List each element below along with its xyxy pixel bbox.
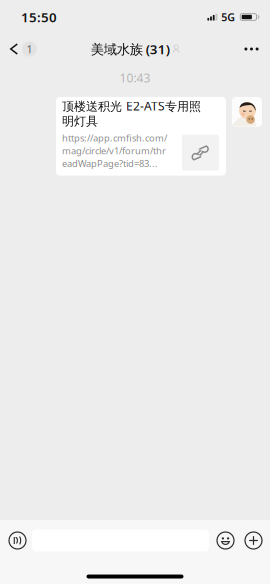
staticText: mag/circle/v1/forum/thr: [62, 144, 166, 157]
staticText: 10:43: [119, 70, 150, 86]
staticText: 美域水族 (31): [91, 40, 170, 58]
button[interactable]: More: [234, 34, 270, 64]
button[interactable]: 1: [0, 34, 47, 64]
button[interactable]: Emoji: [216, 525, 235, 556]
staticText: 顶楼送积光 E2-ATS专用照明灯具: [62, 98, 201, 129]
staticText: 1: [26, 42, 32, 56]
button[interactable]: More options: [244, 525, 263, 556]
staticText: https://app.cmfish.com/: [62, 132, 167, 144]
staticText: 5G: [221, 10, 235, 24]
button[interactable]: 顶楼送积光 E2-ATS专用照明灯具: [56, 97, 226, 176]
button[interactable]: Voice input: [5, 525, 30, 556]
staticText: eadWapPage?tid=83...: [62, 157, 158, 170]
staticText: 15:50: [21, 8, 57, 26]
